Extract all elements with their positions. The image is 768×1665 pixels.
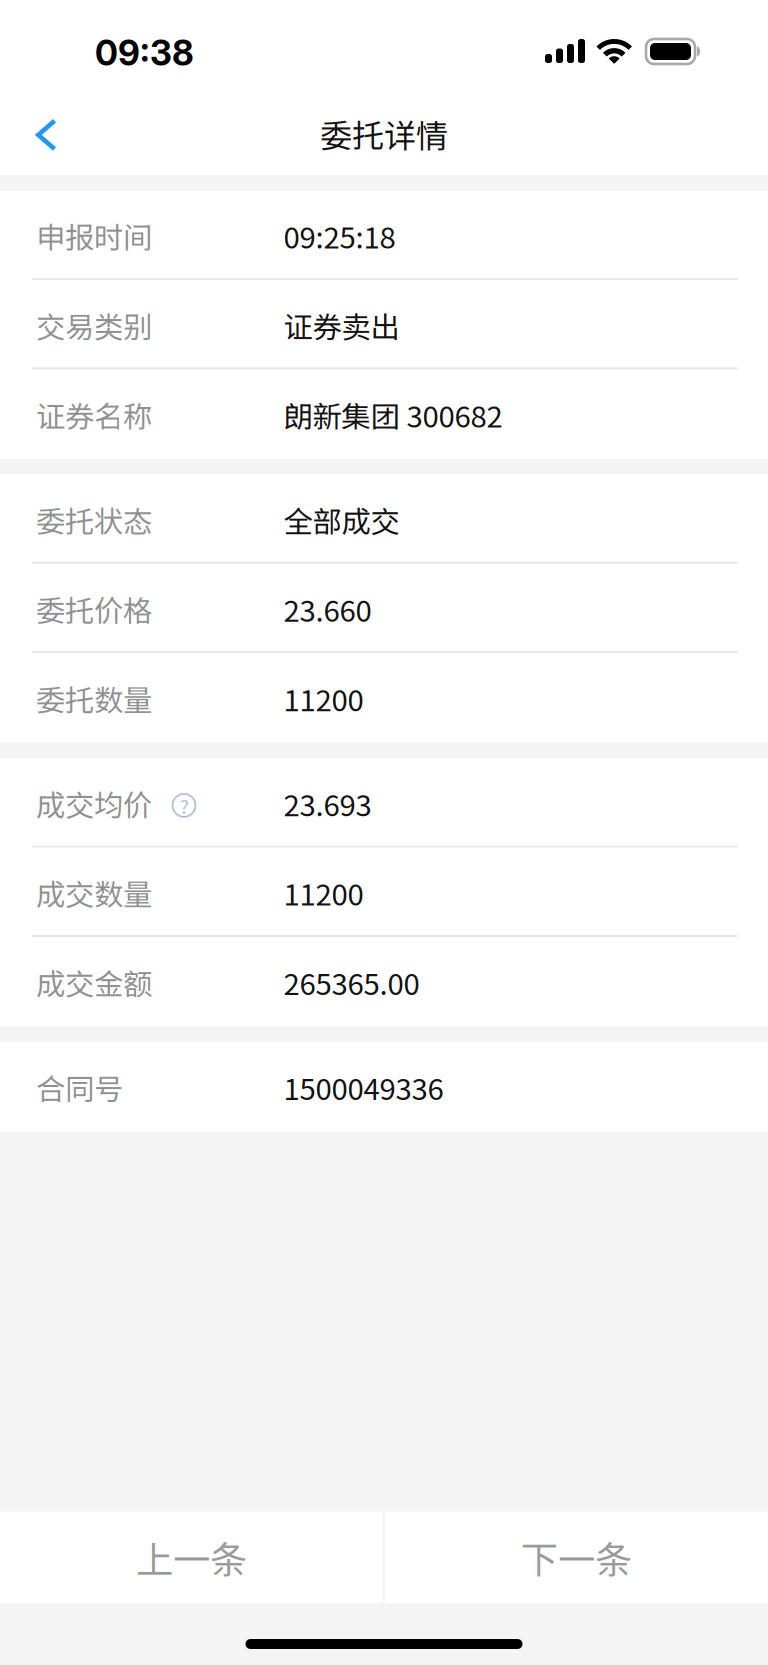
staticText: 全部成交 xyxy=(283,498,399,541)
staticText: 交易类别 xyxy=(36,304,152,346)
staticText: ? xyxy=(179,791,188,820)
staticText: 1500049336 xyxy=(283,1066,443,1108)
staticText: 委托状态 xyxy=(36,498,152,541)
staticText: 委托详情 xyxy=(320,110,448,157)
button[interactable]: 下一条 xyxy=(385,1511,768,1603)
staticText: 11200 xyxy=(283,677,363,720)
staticText: 朗新集团 300682 xyxy=(283,393,502,436)
staticText: 11200 xyxy=(283,872,363,914)
staticText: 23.660 xyxy=(283,588,371,630)
staticText: 上一条 xyxy=(136,1530,247,1584)
staticText: 成交金额 xyxy=(36,961,152,1003)
button[interactable]: 上一条 xyxy=(0,1511,383,1603)
staticText: 委托价格 xyxy=(36,588,152,630)
button[interactable]: 返回 xyxy=(0,95,90,175)
staticText: 委托数量 xyxy=(36,677,152,720)
staticText: 09:25:18 xyxy=(283,215,395,257)
staticText: 合同号 xyxy=(36,1066,123,1108)
staticText: 证券卖出 xyxy=(283,304,399,346)
staticText: 成交均价 xyxy=(36,782,152,825)
staticText: 09:38 xyxy=(95,32,194,74)
staticText: 成交数量 xyxy=(36,872,152,914)
staticText: 265365.00 xyxy=(283,961,419,1003)
staticText: 证券名称 xyxy=(36,393,152,436)
staticText: 下一条 xyxy=(521,1530,632,1584)
staticText: 申报时间 xyxy=(36,215,152,257)
staticText: 23.693 xyxy=(283,782,371,825)
